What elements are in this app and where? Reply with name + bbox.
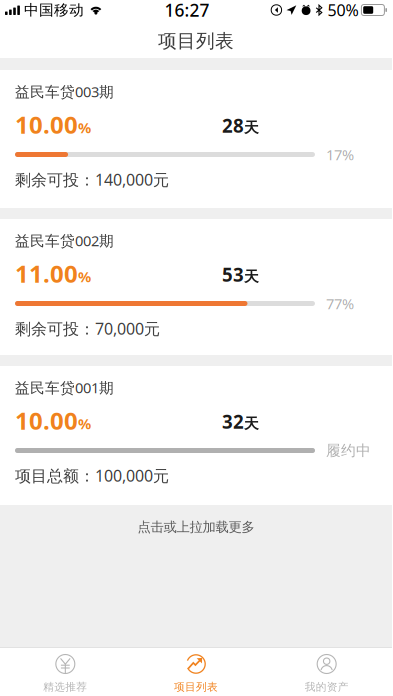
- staticText: 50%: [327, 0, 358, 21]
- staticText: 28: [222, 113, 244, 138]
- button[interactable]: 精选推荐: [0, 648, 131, 696]
- staticText: 17%: [326, 145, 354, 164]
- staticText: 剩余可投：140,000元: [15, 169, 169, 190]
- staticText: 53: [222, 262, 244, 287]
- staticText: 32: [222, 409, 244, 434]
- staticText: 天: [244, 267, 259, 285]
- staticText: 天: [244, 118, 259, 136]
- staticText: 益民车贷001期: [15, 378, 114, 397]
- staticText: 剩余可投：70,000元: [15, 318, 160, 339]
- staticText: 11.00: [15, 258, 78, 289]
- button[interactable]: 点击或上拉加载更多: [0, 505, 392, 549]
- staticText: 16:27: [164, 0, 209, 21]
- staticText: 履约中: [326, 441, 371, 459]
- staticText: 77%: [326, 294, 354, 313]
- staticText: 精选推荐: [43, 680, 87, 693]
- button[interactable]: 我的资产: [261, 648, 392, 696]
- staticText: 益民车贷003期: [15, 82, 114, 101]
- button[interactable]: 益民车贷003期: [0, 70, 392, 208]
- staticText: 10.00: [15, 109, 78, 140]
- staticText: 中国移动: [24, 1, 84, 19]
- staticText: 益民车贷002期: [15, 231, 114, 250]
- staticText: 点击或上拉加载更多: [137, 519, 254, 535]
- staticText: 天: [244, 414, 259, 432]
- staticText: %: [78, 118, 91, 137]
- staticText: 项目总额：100,000元: [15, 465, 169, 486]
- button[interactable]: 益民车贷001期: [0, 366, 392, 505]
- staticText: 我的资产: [305, 680, 349, 693]
- staticText: %: [78, 267, 91, 286]
- staticText: 项目列表: [174, 680, 218, 693]
- staticText: %: [78, 414, 91, 433]
- button[interactable]: 项目列表: [131, 648, 261, 696]
- staticText: 项目列表: [158, 29, 234, 52]
- button[interactable]: 益民车贷002期: [0, 219, 392, 355]
- staticText: 10.00: [15, 405, 78, 436]
